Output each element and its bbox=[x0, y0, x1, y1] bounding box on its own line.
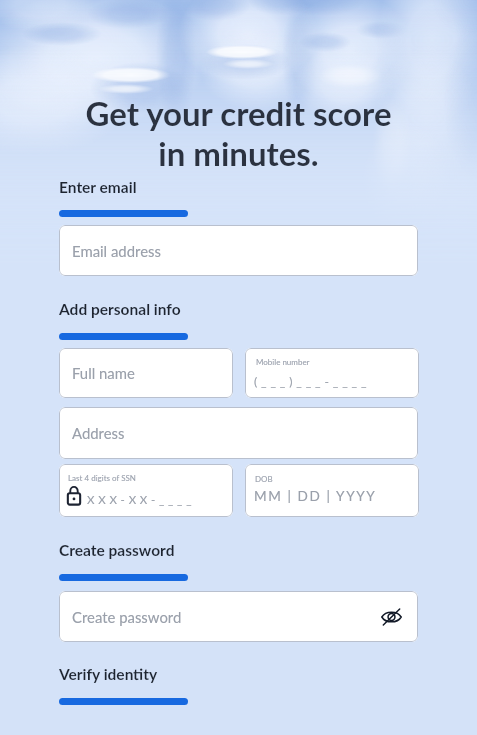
staticText: Email address bbox=[72, 242, 161, 260]
staticText: Verify identity bbox=[59, 665, 158, 684]
button[interactable]: Email address bbox=[59, 225, 418, 276]
staticText: Address bbox=[72, 424, 125, 442]
staticText: ( _ _ _ ) _ _ _ - _ _ _ _ bbox=[254, 374, 367, 388]
staticText: Create password bbox=[59, 541, 175, 560]
button[interactable]: Full name bbox=[59, 348, 233, 398]
staticText: DOB bbox=[255, 474, 273, 484]
staticText: Create password bbox=[72, 608, 182, 626]
button[interactable]: Create password bbox=[59, 591, 418, 642]
staticText: Enter email bbox=[59, 178, 137, 197]
staticText: MM | DD | YYYY bbox=[254, 488, 377, 504]
button[interactable]: Last 4 digits of SSN bbox=[59, 464, 233, 517]
button[interactable]: Show password bbox=[377, 603, 405, 631]
staticText: Full name bbox=[72, 364, 135, 382]
staticText: Mobile number bbox=[256, 357, 310, 367]
button[interactable]: Address bbox=[59, 407, 418, 459]
button[interactable]: DOB bbox=[245, 464, 419, 517]
staticText: Get your credit score in minutes. bbox=[0, 93, 477, 173]
staticText: X X X - X X - _ _ _ _ bbox=[87, 493, 192, 507]
staticText: Last 4 digits of SSN bbox=[68, 473, 136, 483]
button[interactable]: Mobile number bbox=[245, 348, 419, 398]
staticText: Add personal info bbox=[59, 300, 181, 319]
